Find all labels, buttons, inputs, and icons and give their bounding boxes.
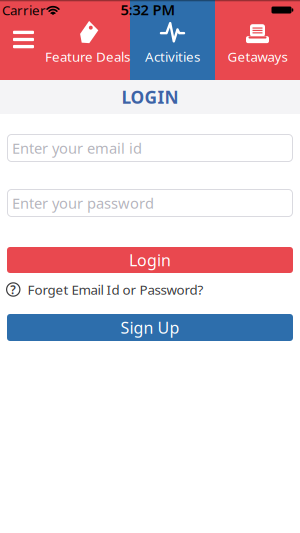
staticText: LOGIN (121, 85, 178, 108)
button[interactable]: Feature Deals (45, 20, 130, 80)
staticText: Feature Deals (45, 48, 130, 65)
staticText: Getaways (227, 48, 287, 65)
staticText: 5:32 PM (120, 0, 175, 19)
staticText: Enter your email id (12, 138, 142, 158)
button[interactable]: ? (0, 282, 300, 297)
button[interactable]: Activities (130, 20, 215, 80)
staticText: Carrier (2, 1, 46, 19)
button[interactable]: Menu (1, 20, 46, 80)
button[interactable]: Login (7, 247, 293, 273)
staticText: Sign Up (120, 317, 179, 338)
staticText: ? (10, 281, 16, 297)
staticText: Enter your password (12, 193, 154, 213)
staticText: Activities (145, 48, 200, 65)
button[interactable]: Enter your email id (7, 134, 293, 162)
button[interactable]: Sign Up (7, 314, 293, 341)
staticText: Login (129, 249, 171, 271)
button[interactable]: Enter your password (7, 189, 293, 217)
staticText: Forget Email Id or Password? (27, 281, 203, 298)
button[interactable]: Getaways (215, 20, 300, 80)
